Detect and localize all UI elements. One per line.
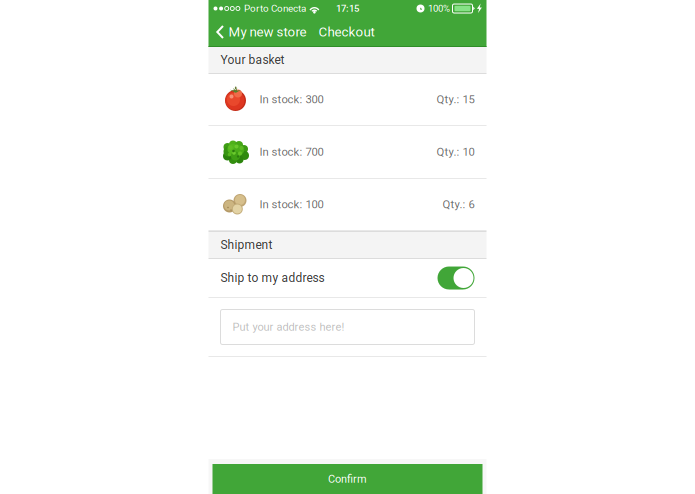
button[interactable]: Ship to my address [208, 259, 486, 298]
staticText: 100% [428, 3, 450, 14]
button[interactable]: In stock: 700 [208, 126, 486, 179]
staticText: In stock: 300 [259, 93, 323, 106]
button[interactable]: In stock: 100 [208, 179, 486, 231]
staticText: Checkout [318, 24, 374, 40]
staticText: Confirm [328, 473, 367, 485]
staticText: Qty.: 10 [436, 145, 474, 159]
staticText: Put your address here! [232, 320, 344, 333]
staticText: Qty.: 6 [442, 198, 474, 211]
staticText: Qty.: 15 [436, 93, 474, 106]
button[interactable]: Put your address here! [220, 309, 474, 344]
staticText: Ship to my address [220, 271, 324, 285]
button[interactable]: In stock: 300 [208, 74, 486, 126]
staticText: My new store [228, 24, 306, 40]
staticText: Porto Conecta [244, 3, 306, 14]
staticText: In stock: 700 [259, 145, 323, 159]
staticText: In stock: 100 [259, 198, 323, 211]
button[interactable]: Confirm [212, 464, 482, 494]
staticText: Your basket [220, 53, 284, 67]
staticText: 17:15 [336, 3, 359, 14]
staticText: Shipment [220, 238, 272, 252]
button[interactable]: My new store [208, 17, 312, 47]
